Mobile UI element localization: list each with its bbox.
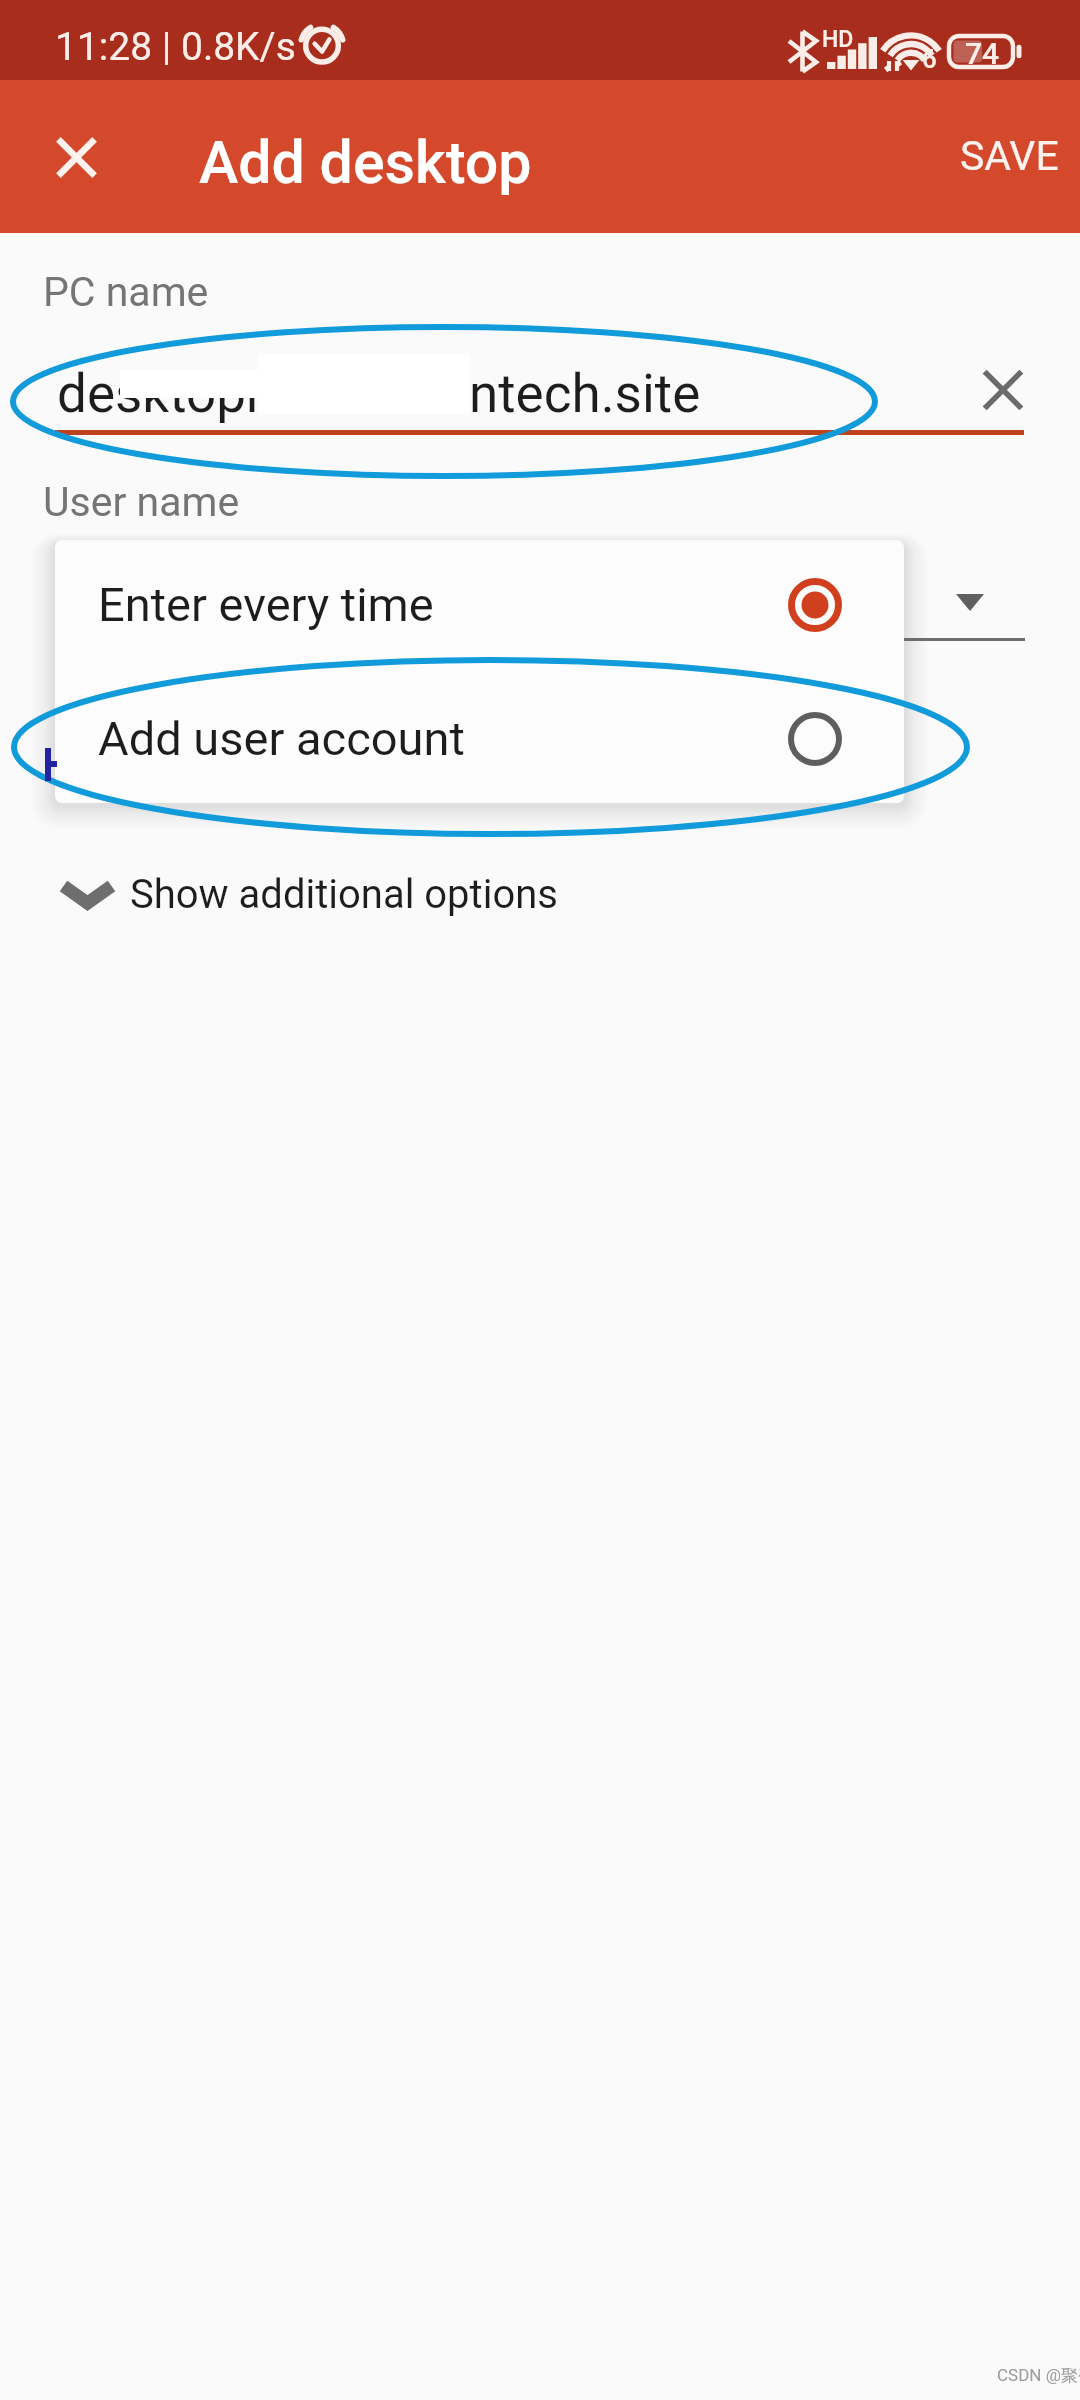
staticText: Show additional options: [130, 871, 558, 918]
staticText: 74: [965, 36, 1000, 71]
staticText: CSDN @聚变: [997, 2365, 1080, 2386]
staticText: Add user account: [98, 711, 465, 766]
staticText: 6: [922, 44, 937, 74]
button[interactable]: Clear text: [967, 354, 1039, 426]
button[interactable]: SAVE: [949, 106, 1069, 206]
button[interactable]: Add user account: [55, 674, 904, 803]
staticText: HD: [822, 26, 854, 53]
staticText: Enter every time: [98, 577, 434, 632]
button[interactable]: Close: [41, 122, 112, 193]
button[interactable]: Show additional options: [40, 850, 585, 936]
staticText: SAVE: [960, 132, 1059, 180]
staticText: Add desktop: [199, 128, 532, 197]
staticText: PC name: [43, 268, 209, 316]
staticText: ntech.site: [469, 363, 701, 425]
button[interactable]: Enter every time: [55, 540, 904, 669]
staticText: 11:28 | 0.8K/s: [55, 24, 296, 70]
staticText: desktopn: [57, 363, 276, 425]
staticText: User name: [43, 478, 240, 526]
